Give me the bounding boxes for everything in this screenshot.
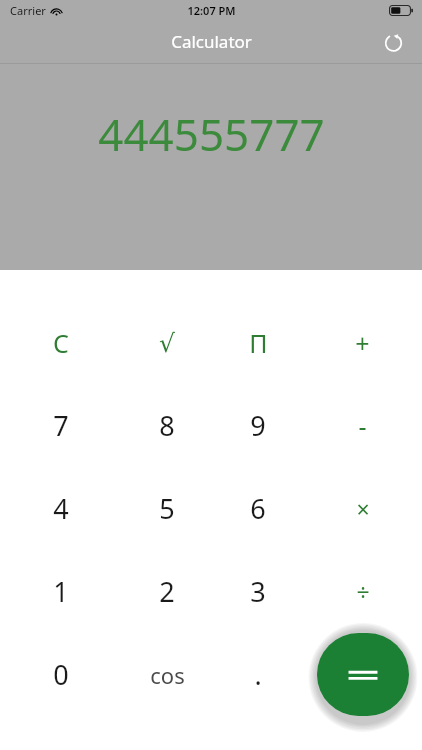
staticText: 12:07 PM: [187, 3, 236, 18]
button[interactable]: 1: [0, 550, 121, 633]
staticText: 6: [250, 490, 266, 527]
button[interactable]: C: [0, 302, 121, 384]
staticText: 8: [159, 407, 175, 444]
staticText: 444555777: [98, 104, 325, 164]
staticText: 3: [250, 573, 266, 610]
button[interactable]: 6: [213, 467, 303, 550]
staticText: √: [159, 329, 175, 358]
staticText: 4: [53, 490, 69, 527]
staticText: C: [53, 326, 69, 360]
staticText: cos: [150, 660, 185, 690]
staticText: -: [358, 409, 367, 443]
staticText: 9: [250, 407, 266, 444]
staticText: 7: [53, 407, 69, 444]
button[interactable]: 8: [121, 384, 213, 467]
button[interactable]: 7: [0, 384, 121, 467]
staticText: Calculator: [171, 30, 252, 53]
button[interactable]: +: [303, 302, 422, 384]
button[interactable]: 4: [0, 467, 121, 550]
button[interactable]: Π: [213, 302, 303, 384]
button[interactable]: ÷: [303, 550, 422, 633]
button[interactable]: 5: [121, 467, 213, 550]
button[interactable]: 3: [213, 550, 303, 633]
button[interactable]: ×: [303, 467, 422, 550]
staticText: 5: [159, 490, 175, 527]
staticText: Π: [249, 326, 268, 360]
staticText: 2: [159, 573, 175, 610]
button[interactable]: Equals: [317, 633, 409, 716]
staticText: Carrier: [10, 3, 46, 18]
staticText: 0: [53, 656, 69, 693]
button[interactable]: cos: [121, 633, 213, 716]
button[interactable]: 2: [121, 550, 213, 633]
staticText: ÷: [356, 576, 370, 607]
button[interactable]: 9: [213, 384, 303, 467]
button[interactable]: 0: [0, 633, 121, 716]
button[interactable]: -: [303, 384, 422, 467]
staticText: +: [355, 326, 370, 360]
staticText: .: [254, 656, 262, 693]
button[interactable]: .: [213, 633, 303, 716]
staticText: ×: [356, 493, 370, 524]
button[interactable]: Refresh: [376, 25, 410, 59]
staticText: 1: [53, 573, 69, 610]
button[interactable]: √: [121, 302, 213, 384]
